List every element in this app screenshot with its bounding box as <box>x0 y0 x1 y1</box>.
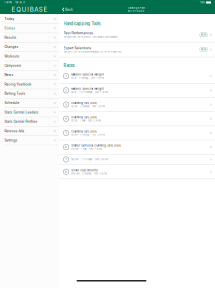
staticText: Carryovers <box>4 64 21 67</box>
button[interactable]: Carryovers <box>0 61 59 70</box>
staticText: Remove Ads <box>4 129 24 133</box>
staticText: Purchase Past Performances, race updates… <box>64 36 118 38</box>
button[interactable]: Stats Central Profiles <box>0 117 59 126</box>
staticText: Back <box>65 7 73 12</box>
button[interactable]: Stats Central Leaders <box>0 108 59 117</box>
staticText: $5,200 · 6 Furlongs · Post 2:00 PM <box>71 105 105 108</box>
staticText: Jul 21 2020 <box>127 10 144 13</box>
button[interactable]: 2 <box>59 83 215 98</box>
staticText: Entries <box>4 26 15 30</box>
staticText: Maiden Special Weight <box>71 87 104 90</box>
staticText: Saratoga Park <box>127 6 144 9</box>
staticText: Betting Tools <box>4 92 25 95</box>
button[interactable]: 5 <box>59 126 215 140</box>
staticText: Workouts <box>4 54 19 58</box>
staticText: Racing Yearbook <box>4 82 31 86</box>
staticText: Changes <box>4 45 18 49</box>
staticText: $0.00 · 5 1/2 Furlongs · Post 1:30 PM <box>71 91 108 93</box>
staticText: $0.00 · 6 Furlongs · Post 1:00 PM <box>71 77 104 79</box>
button[interactable]: 4 <box>59 112 215 126</box>
button[interactable]: Workouts <box>0 52 59 61</box>
staticText: Maiden Special Weight <box>71 73 104 76</box>
staticText: Past Performances <box>64 31 94 35</box>
staticText: News <box>4 73 13 77</box>
staticText: 1 <box>66 75 67 78</box>
staticText: Handicapping Tools <box>64 21 101 26</box>
button[interactable]: 3 <box>59 98 215 112</box>
staticText: Tue Jul 21 <box>12 1 25 4</box>
staticText: Results <box>4 36 16 39</box>
staticText: $4.95 <box>201 48 206 51</box>
staticText: $50,000 · 1 1/16 Miles · Post 4:00 PM <box>71 158 108 161</box>
staticText: Claiming ($5,000) <box>71 130 97 133</box>
staticText: Expert Selections <box>64 46 92 50</box>
staticText: $4.95 <box>201 33 206 36</box>
staticText: 6 <box>65 146 67 149</box>
button[interactable]: Racing Yearbook <box>0 80 59 89</box>
staticText: 4 <box>65 117 67 120</box>
button[interactable]: Past Performances <box>59 27 215 42</box>
staticText: $10,000 · 1 Mile · Post 3:30 PM <box>71 148 102 150</box>
staticText: EQUIBASE <box>12 6 47 13</box>
staticText: 2 <box>65 89 67 92</box>
staticText: 1:08 PM <box>4 1 12 4</box>
staticText: Claiming ($5,200) <box>71 116 97 119</box>
button[interactable]: 7 <box>59 154 215 165</box>
button[interactable]: Remove Ads <box>0 127 59 136</box>
staticText: 8 <box>65 170 67 173</box>
staticText: 7 <box>66 158 67 161</box>
button[interactable]: 1 <box>59 69 215 83</box>
staticText: Selections from professional handicapper… <box>64 51 122 53</box>
staticText: $5,200 · 1 Mile · Post 2:30 PM <box>71 119 101 122</box>
staticText: 100% <box>200 1 205 4</box>
staticText: Stats Central Profiles <box>4 120 37 124</box>
button[interactable]: Back <box>59 6 75 13</box>
staticText: Stats Central Leaders <box>4 110 38 114</box>
button[interactable]: Betting Tools <box>0 89 59 98</box>
button[interactable]: News <box>0 70 59 80</box>
staticText: $5,000 · 6 Furlongs · Post 3:00 PM <box>71 134 105 136</box>
staticText: Settings <box>4 138 17 142</box>
staticText: $100,000 · 6 Furlongs · Post 4:30 PM <box>71 172 107 175</box>
button[interactable]: Schedule <box>0 99 59 108</box>
staticText: Silver Cup Futurity <box>71 169 97 172</box>
button[interactable]: Today <box>0 14 59 24</box>
button[interactable]: 6 <box>59 140 215 154</box>
staticText: Schedule <box>4 101 19 105</box>
staticText: Today <box>4 17 14 21</box>
button[interactable]: Settings <box>0 136 59 145</box>
button[interactable]: Changes <box>0 42 59 52</box>
button[interactable]: 8 <box>59 165 215 179</box>
staticText: Races <box>64 63 75 68</box>
staticText: 5 <box>66 131 67 134</box>
staticText: 3 <box>65 103 67 106</box>
button[interactable]: Entries <box>0 24 59 33</box>
button[interactable]: Results <box>0 33 59 42</box>
staticText: Claiming ($5,200) <box>71 101 97 105</box>
button[interactable]: Expert Selections <box>59 42 215 57</box>
staticText: Starter Optional Claiming ($10,000) <box>71 144 121 147</box>
